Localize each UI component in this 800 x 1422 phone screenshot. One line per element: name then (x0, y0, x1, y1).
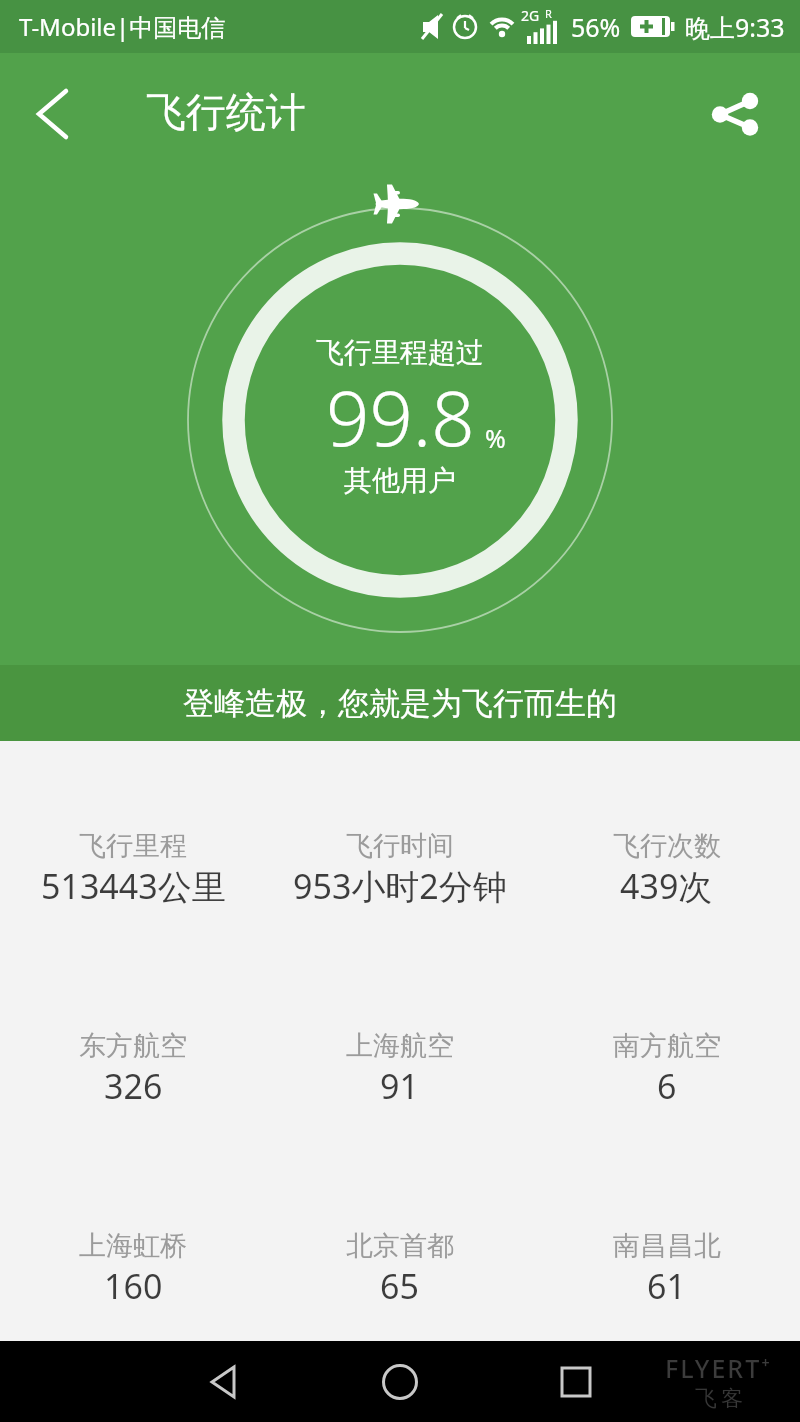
staticText: 160 (104, 1263, 163, 1309)
staticText: 91 (380, 1063, 419, 1109)
button[interactable] (136, 1341, 312, 1422)
staticText: 上海航空 (346, 1029, 454, 1063)
button[interactable]: 上海虹桥 (0, 1229, 266, 1339)
staticText: 其他用户 (344, 463, 456, 498)
staticText: 南昌昌北 (613, 1229, 721, 1263)
staticText: R (545, 6, 552, 21)
button[interactable]: 飞行次数 (533, 829, 800, 939)
staticText: T-Mobile|中国电信 (19, 10, 226, 43)
staticText: FLYERT⁺ (665, 1351, 772, 1385)
staticText: 东方航空 (79, 1029, 187, 1063)
staticText: % (485, 421, 506, 455)
staticText: 飞行时间 (346, 829, 454, 863)
button[interactable] (18, 85, 78, 145)
staticText: 飞行里程超过 (316, 335, 484, 370)
staticText: 飞行次数 (613, 829, 721, 863)
staticText: 326 (104, 1063, 163, 1109)
staticText: 2G (521, 6, 540, 25)
staticText: 飞客 (693, 1385, 745, 1413)
button[interactable]: 飞行里程 (0, 829, 266, 939)
button[interactable] (700, 91, 764, 155)
staticText: 南方航空 (613, 1029, 721, 1063)
button[interactable] (312, 1341, 488, 1422)
button[interactable]: 南昌昌北 (533, 1229, 800, 1339)
button[interactable]: 北京首都 (266, 1229, 533, 1339)
button[interactable]: 东方航空 (0, 1029, 266, 1139)
button[interactable]: 上海航空 (266, 1029, 533, 1139)
staticText: 953小时2分钟 (293, 863, 507, 909)
staticText: 晚上9:33 (685, 10, 785, 44)
staticText: 65 (380, 1263, 419, 1309)
staticText: 513443公里 (41, 863, 226, 909)
staticText: 北京首都 (346, 1229, 454, 1263)
staticText: 439次 (620, 863, 713, 909)
staticText: 61 (647, 1263, 686, 1309)
staticText: 上海虹桥 (79, 1229, 187, 1263)
staticText: 登峰造极，您就是为飞行而生的 (183, 684, 617, 723)
staticText: 飞行里程 (79, 829, 187, 863)
button[interactable]: 南方航空 (533, 1029, 800, 1139)
staticText: 飞行统计 (146, 87, 306, 137)
staticText: 56% (571, 10, 621, 44)
staticText: 6 (657, 1063, 677, 1109)
button[interactable]: 飞行时间 (266, 829, 533, 939)
staticText: 99.8 (326, 365, 475, 450)
button[interactable] (488, 1341, 664, 1422)
